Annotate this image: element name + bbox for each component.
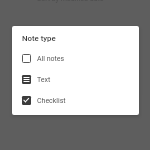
staticText: Note type [22,34,56,43]
button[interactable]: Text [12,69,139,90]
staticText: All notes [37,55,65,63]
button[interactable]: Checklist [12,90,139,111]
staticText: Text [37,76,51,84]
button[interactable]: All notes [12,48,139,69]
staticText: Checklist [37,97,66,105]
staticText: Sort by modified date [37,0,104,3]
